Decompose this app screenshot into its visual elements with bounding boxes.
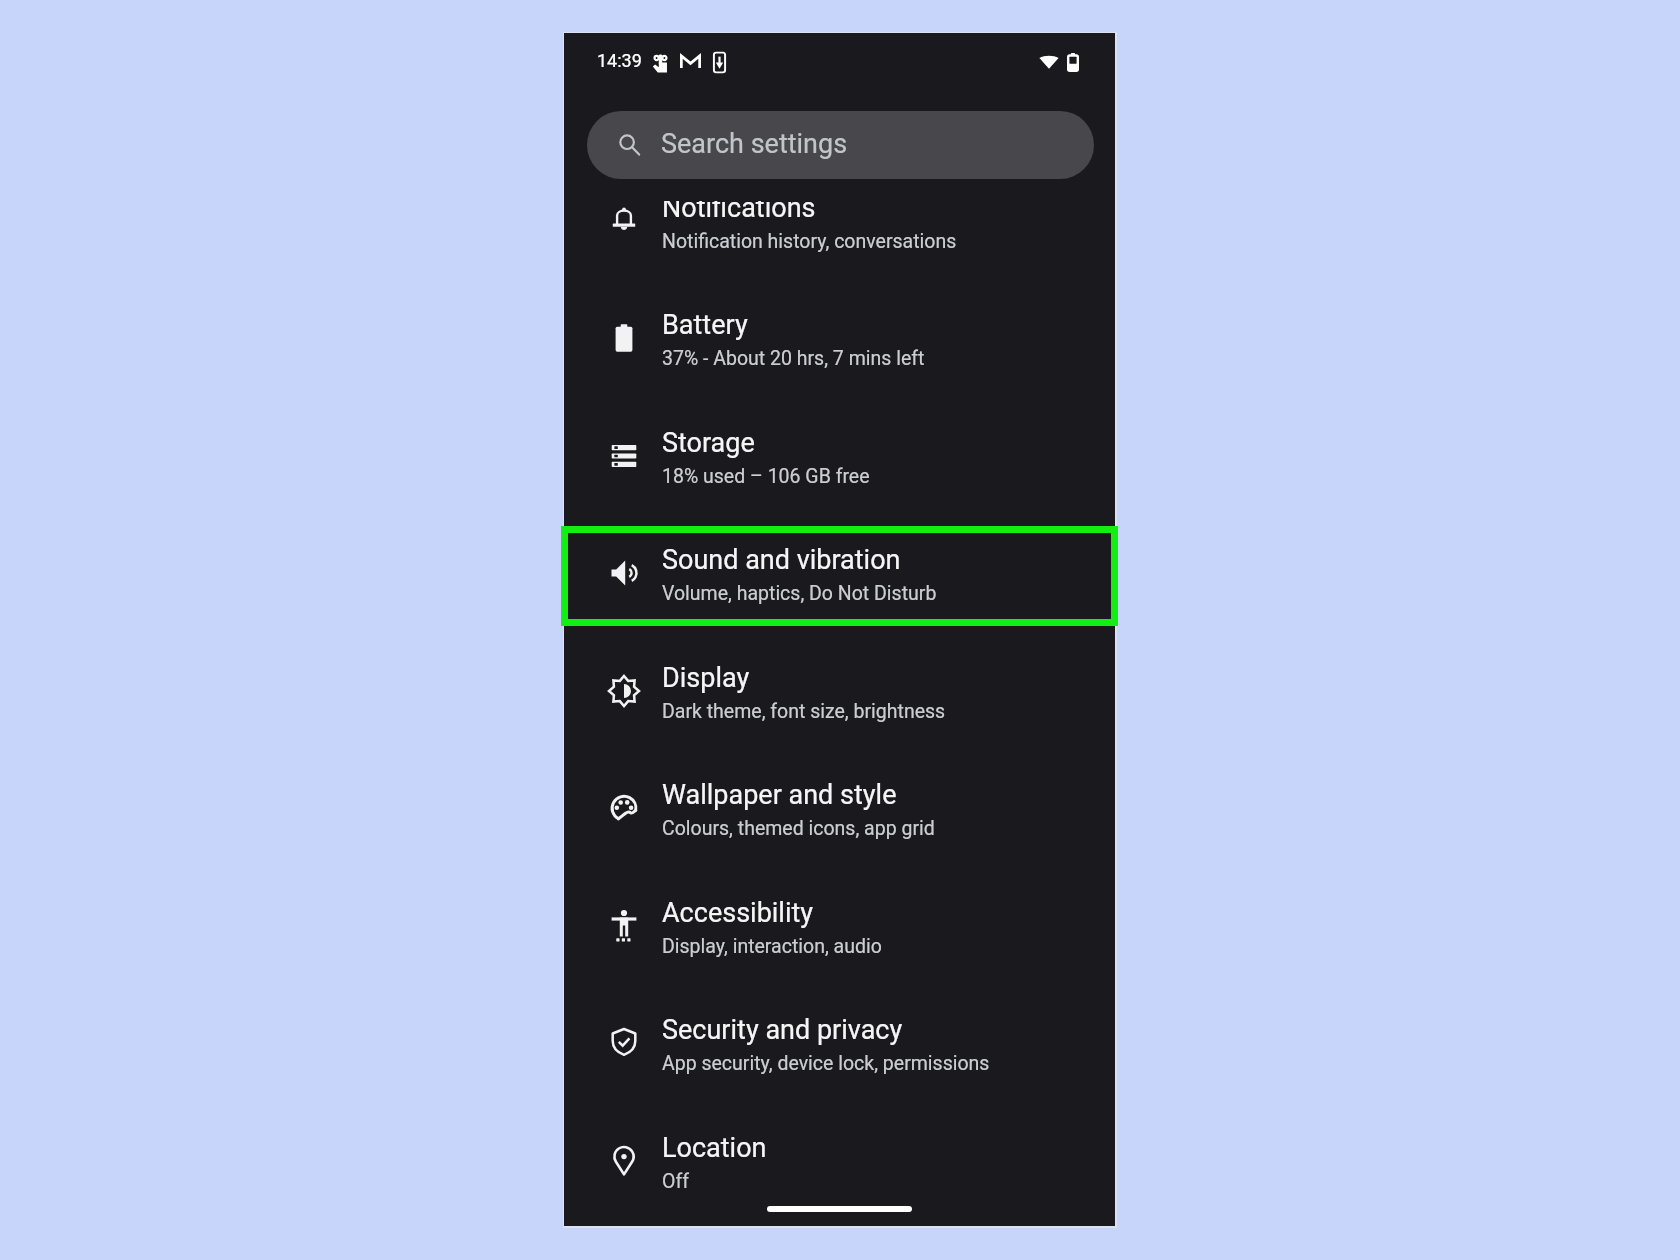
button[interactable]: Sound and vibration	[564, 544, 1115, 662]
staticText: App security, device lock, permissions	[662, 1052, 990, 1075]
staticText: Off	[662, 1170, 689, 1193]
button[interactable]: Accessibility	[564, 897, 1115, 1015]
button[interactable]: Battery	[564, 309, 1115, 427]
button[interactable]: Display	[564, 662, 1115, 780]
staticText: Search settings	[661, 128, 848, 160]
staticText: Sound and vibration	[662, 544, 901, 576]
staticText: 37% - About 20 hrs, 7 mins left	[662, 347, 925, 370]
staticText: Colours, themed icons, app grid	[662, 817, 935, 840]
staticText: Volume, haptics, Do Not Disturb	[662, 582, 937, 605]
button[interactable]: Storage	[564, 427, 1115, 545]
staticText: Storage	[662, 427, 755, 459]
button[interactable]: Notifications	[564, 201, 1115, 310]
staticText: Notification history, conversations	[662, 230, 957, 253]
staticText: Dark theme, font size, brightness	[662, 700, 946, 723]
button[interactable]: Location	[564, 1132, 1115, 1226]
staticText: Battery	[662, 309, 748, 341]
staticText: Accessibility	[662, 897, 814, 929]
staticText: Display, interaction, audio	[662, 935, 882, 958]
staticText: Location	[662, 1132, 767, 1164]
staticText: 18% used – 106 GB free	[662, 465, 870, 488]
staticText: Wallpaper and style	[662, 779, 897, 811]
button[interactable]: Security and privacy	[564, 1014, 1115, 1132]
button[interactable]: Wallpaper and style	[564, 779, 1115, 897]
staticText: Notifications	[662, 201, 816, 224]
staticText: 14:39	[597, 50, 642, 71]
staticText: Display	[662, 662, 750, 694]
staticText: Security and privacy	[662, 1014, 903, 1046]
button[interactable]: Search settings	[587, 111, 1094, 179]
